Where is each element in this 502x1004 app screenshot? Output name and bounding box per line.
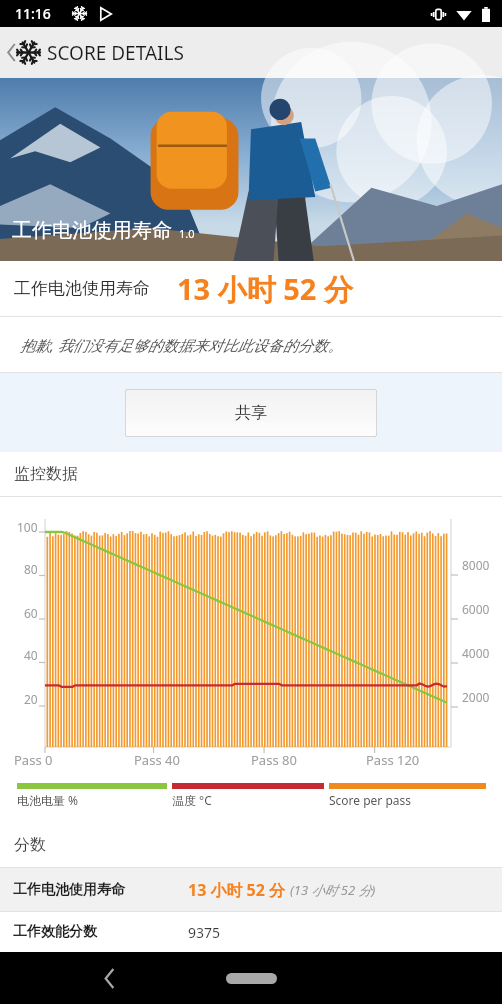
staticText: 抱歉, 我们没有足够的数据来对比此设备的分数。 — [20, 335, 343, 355]
staticText: 6000 — [462, 601, 490, 617]
staticText: 2000 — [462, 689, 490, 705]
button[interactable]: Back — [92, 961, 126, 995]
staticText: 8000 — [462, 557, 490, 573]
button[interactable]: Back — [0, 27, 502, 78]
staticText: Score per pass — [329, 792, 412, 808]
staticText: 100 — [17, 519, 38, 535]
staticText: Pass 0 — [14, 751, 53, 769]
staticText: 9375 — [188, 923, 221, 942]
staticText: 温度 °C — [172, 792, 212, 808]
staticText: 工作效能分数 — [13, 923, 97, 941]
button[interactable]: Home — [226, 973, 277, 984]
button[interactable]: 工作效能分数 — [0, 912, 502, 952]
staticText: 13 小时 52 分 — [188, 879, 286, 901]
staticText: 电池电量 % — [17, 792, 79, 808]
staticText: SCORE DETAILS — [47, 40, 184, 66]
staticText: 共享 — [235, 403, 267, 423]
staticText: 13 小时 52 分 — [177, 269, 353, 309]
staticText: 4000 — [462, 645, 490, 661]
button[interactable]: 共享 — [125, 389, 377, 437]
staticText: 40 — [24, 647, 38, 663]
staticText: (13 小时 52 分) — [290, 881, 376, 899]
staticText: 20 — [24, 691, 38, 707]
staticText: Pass 40 — [134, 751, 180, 769]
staticText: 11:16 — [15, 4, 51, 23]
staticText: 监控数据 — [14, 464, 78, 484]
staticText: Pass 80 — [251, 751, 297, 769]
staticText: 工作电池使用寿命 — [12, 218, 172, 243]
staticText: 80 — [24, 561, 38, 577]
staticText: 工作电池使用寿命 — [14, 278, 150, 299]
staticText: 工作电池使用寿命 — [13, 881, 125, 899]
staticText: 60 — [24, 605, 38, 621]
button[interactable]: 工作电池使用寿命 — [0, 868, 502, 911]
staticText: 1.0 — [179, 226, 195, 241]
staticText: Pass 120 — [366, 751, 420, 769]
staticText: 分数 — [14, 835, 46, 855]
